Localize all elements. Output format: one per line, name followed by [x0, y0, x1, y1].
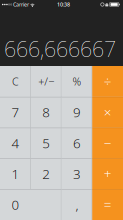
button[interactable]: 3 — [61, 158, 92, 189]
staticText: 8 — [42, 103, 50, 121]
staticText: 6 — [73, 134, 81, 152]
staticText: 1 — [11, 165, 19, 183]
button[interactable]: + — [92, 158, 123, 189]
button[interactable]: 1 — [0, 158, 31, 189]
staticText: 0 — [11, 196, 19, 213]
staticText: × — [104, 103, 112, 121]
staticText: = — [104, 196, 112, 213]
staticText: 4 — [11, 134, 19, 152]
staticText: + — [104, 165, 112, 183]
button[interactable]: , — [61, 189, 92, 220]
staticText: Carrier — [12, 1, 30, 8]
staticText: 666,666667 — [4, 35, 116, 63]
staticText: ÷ — [104, 72, 112, 90]
staticText: 2 — [42, 165, 50, 183]
button[interactable]: − — [92, 128, 123, 158]
button[interactable]: 0 — [0, 189, 61, 220]
button[interactable]: +/− — [31, 66, 62, 97]
staticText: − — [104, 134, 112, 152]
button[interactable]: × — [92, 97, 123, 128]
button[interactable]: 4 — [0, 128, 31, 158]
staticText: +/− — [38, 74, 54, 88]
staticText: 5 — [42, 134, 50, 152]
staticText: 3 — [73, 165, 81, 183]
button[interactable]: = — [92, 189, 123, 220]
staticText: % — [72, 74, 81, 88]
staticText: , — [75, 196, 78, 213]
staticText: 9 — [73, 103, 81, 121]
button[interactable]: 9 — [61, 97, 92, 128]
button[interactable]: 5 — [31, 128, 62, 158]
button[interactable]: 7 — [0, 97, 31, 128]
staticText: 7 — [11, 103, 19, 121]
button[interactable]: % — [61, 66, 92, 97]
staticText: C — [12, 74, 19, 88]
button[interactable]: 8 — [31, 97, 62, 128]
button[interactable]: ÷ — [92, 66, 123, 97]
button[interactable]: C — [0, 66, 31, 97]
staticText: 10:38 — [57, 1, 70, 8]
button[interactable]: 2 — [31, 158, 62, 189]
button[interactable]: 6 — [61, 128, 92, 158]
